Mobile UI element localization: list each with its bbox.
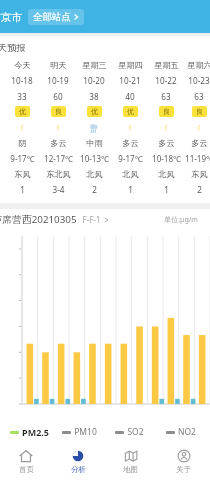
staticText: PM10 <box>74 426 97 438</box>
button[interactable]: 星期四 <box>112 60 148 195</box>
staticText: PM2.5 <box>22 426 49 438</box>
staticText: 10-18 <box>11 75 33 86</box>
staticText: 2 <box>197 184 202 195</box>
staticText: 东风 <box>191 169 208 179</box>
staticText: 63 <box>161 91 171 102</box>
staticText: 南京市 <box>0 11 22 24</box>
staticText: 10-23 <box>188 75 210 86</box>
staticText: 2 <box>92 184 97 195</box>
staticText: 10-18℃ <box>152 153 181 164</box>
staticText: NO2 <box>178 426 196 438</box>
staticText: 10-21 <box>119 75 141 86</box>
button[interactable]: 芦席营西20210305 <box>0 213 109 226</box>
staticText: 明天 <box>50 60 67 70</box>
staticText: 9-17℃ <box>10 153 35 164</box>
staticText: 多云 <box>122 138 139 148</box>
button[interactable]: 首页 <box>0 442 52 480</box>
staticText: 7天预报 <box>0 41 26 54</box>
staticText: 多云 <box>50 138 67 148</box>
staticText: 良 <box>196 107 203 116</box>
staticText: 优 <box>91 107 98 116</box>
button[interactable]: 星期六 <box>184 60 210 195</box>
button[interactable]: 全部站点 <box>28 9 84 25</box>
button[interactable]: 分析 <box>52 442 104 480</box>
staticText: SO2 <box>127 426 144 438</box>
staticText: 10-20 <box>83 75 105 86</box>
staticText: 60 <box>53 91 63 102</box>
button[interactable]: SO2 <box>104 426 155 438</box>
staticText: 10-13℃ <box>80 153 109 164</box>
staticText: 星期六 <box>187 60 210 70</box>
staticText: 东风 <box>14 169 31 179</box>
staticText: 单位:μg/m <box>164 215 198 225</box>
button[interactable]: PM2.5 <box>4 426 54 438</box>
button[interactable]: 星期三 <box>76 60 112 195</box>
staticText: 10-19 <box>47 75 69 86</box>
staticText: 1 <box>128 184 133 195</box>
staticText: 关于 <box>176 465 191 474</box>
button[interactable]: 地图 <box>104 442 157 480</box>
staticText: 3-4 <box>52 184 65 195</box>
staticText: 良 <box>55 107 62 116</box>
staticText: 北风 <box>158 169 175 179</box>
staticText: 1 <box>20 184 25 195</box>
staticText: 地图 <box>123 465 138 474</box>
button[interactable]: 关于 <box>157 442 210 480</box>
button[interactable]: 明天 <box>40 60 76 195</box>
staticText: 良 <box>163 107 170 116</box>
staticText: 9-17℃ <box>118 153 143 164</box>
staticText: 优 <box>19 107 26 116</box>
staticText: 阴 <box>18 138 27 148</box>
staticText: 12-17℃ <box>44 153 73 164</box>
staticText: 10-22 <box>155 75 177 86</box>
button[interactable]: 星期五 <box>148 60 184 195</box>
staticText: 芦席营西20210305 <box>0 213 77 226</box>
staticText: 星期三 <box>82 60 107 70</box>
staticText: 星期五 <box>154 60 179 70</box>
staticText: 33 <box>17 91 27 102</box>
staticText: 40 <box>125 91 135 102</box>
staticText: 63 <box>194 91 204 102</box>
staticText: 今天 <box>14 60 31 70</box>
button[interactable]: PM10 <box>54 426 104 438</box>
staticText: 东北风 <box>46 169 71 179</box>
staticText: 分析 <box>71 465 86 474</box>
staticText: 北风 <box>122 169 139 179</box>
staticText: 星期四 <box>118 60 143 70</box>
staticText: 多云 <box>191 138 208 148</box>
staticText: F-F-1 <box>82 214 101 225</box>
button[interactable]: 今天 <box>4 60 40 195</box>
staticText: 11-19℃ <box>185 153 210 164</box>
staticText: 38 <box>89 91 99 102</box>
staticText: 多云 <box>158 138 175 148</box>
staticText: 中雨 <box>86 138 103 148</box>
staticText: 1 <box>164 184 169 195</box>
staticText: 北风 <box>86 169 103 179</box>
staticText: 优 <box>127 107 134 116</box>
staticText: 全部站点 <box>33 11 71 23</box>
staticText: 首页 <box>19 465 34 474</box>
button[interactable]: NO2 <box>155 426 206 438</box>
